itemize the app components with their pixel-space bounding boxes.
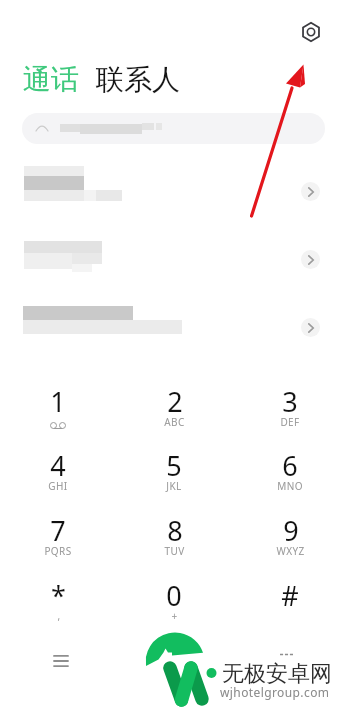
staticText: 4 — [50, 447, 66, 484]
button[interactable]: # — [233, 577, 345, 633]
button[interactable]: 6 — [233, 447, 345, 503]
button[interactable]: 0 — [117, 577, 231, 633]
button[interactable]: * — [1, 577, 115, 633]
staticText: DEF — [280, 415, 300, 429]
button[interactable]: 9 — [233, 512, 345, 568]
staticText: , — [57, 609, 61, 623]
staticText: TUV — [164, 544, 185, 558]
staticText: ABC — [164, 415, 185, 429]
button[interactable]: 3 — [233, 383, 345, 439]
staticText: 6 — [282, 447, 298, 484]
staticText: + — [171, 609, 178, 623]
button[interactable]: Settings — [297, 18, 325, 46]
staticText: 9 — [283, 512, 299, 549]
button[interactable]: Keypad menu — [48, 648, 74, 674]
staticText: GHI — [48, 479, 68, 493]
staticText: MNO — [277, 479, 303, 493]
button[interactable]: 7 — [1, 512, 115, 568]
staticText: 7 — [50, 512, 66, 549]
staticText: 通话 — [23, 62, 79, 97]
staticText: # — [281, 577, 299, 614]
button[interactable] — [22, 113, 325, 144]
staticText: 无极安卓网 — [222, 660, 332, 688]
staticText: * — [51, 577, 66, 614]
staticText: WXYZ — [276, 544, 305, 558]
button[interactable]: 5 — [117, 447, 231, 503]
button[interactable] — [0, 157, 345, 225]
button[interactable]: More options — [273, 641, 299, 667]
button[interactable]: 1 — [1, 383, 115, 439]
staticText: 5 — [166, 447, 182, 484]
staticText: 1 — [50, 383, 66, 420]
staticText: 联系人 — [96, 62, 180, 97]
staticText: 2 — [167, 383, 183, 420]
staticText: wjhotelgroup.com — [220, 684, 330, 700]
button[interactable] — [0, 225, 345, 293]
staticText: 0 — [166, 577, 182, 614]
staticText: PQRS — [44, 544, 72, 558]
button[interactable] — [0, 293, 345, 361]
button[interactable]: 联系人 — [95, 62, 181, 97]
button[interactable]: 通话 — [22, 62, 80, 97]
button[interactable]: 2 — [117, 383, 231, 439]
button[interactable]: Call — [141, 658, 205, 709]
staticText: 3 — [282, 383, 298, 420]
button[interactable]: 8 — [117, 512, 231, 568]
button[interactable]: 4 — [1, 447, 115, 503]
staticText: JKL — [166, 479, 182, 493]
staticText: 8 — [167, 512, 183, 549]
